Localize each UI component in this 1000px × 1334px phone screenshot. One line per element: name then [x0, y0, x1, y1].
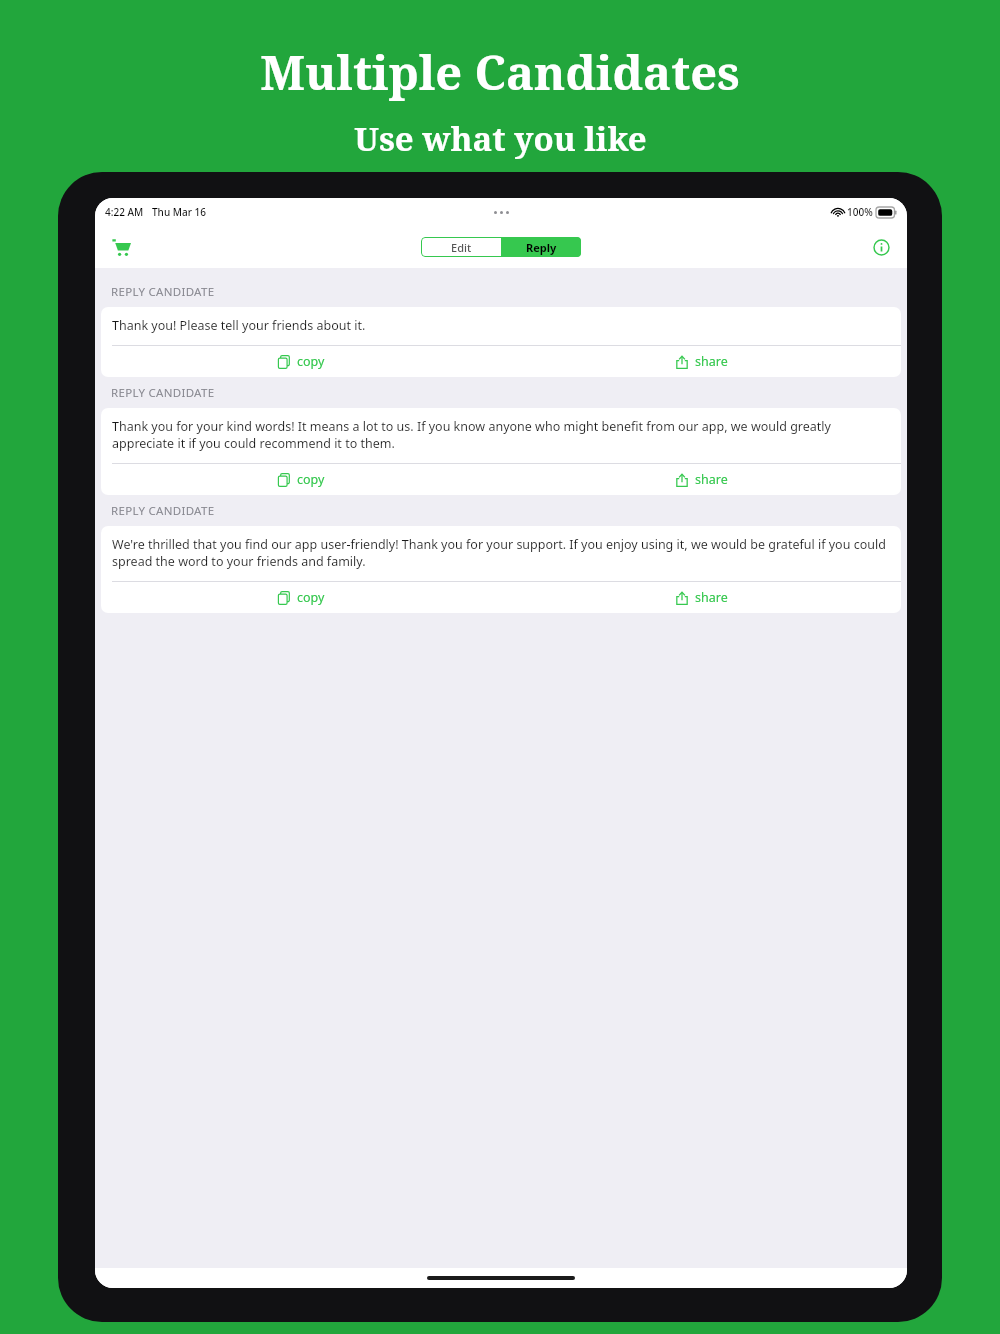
button[interactable]: Info: [863, 229, 899, 265]
button[interactable]: Store: [103, 229, 139, 265]
button[interactable]: Thank you for your kind words! It means …: [101, 408, 901, 463]
button[interactable]: Edit: [421, 237, 501, 257]
button[interactable]: Thank you! Please tell your friends abou…: [101, 307, 901, 345]
staticText: REPLY CANDIDATE: [111, 503, 215, 519]
staticText: copy: [297, 589, 325, 606]
staticText: Reply: [526, 240, 557, 255]
staticText: Thu Mar 16: [152, 205, 206, 219]
staticText: We're thrilled that you find our app use…: [112, 536, 890, 570]
staticText: REPLY CANDIDATE: [111, 385, 215, 401]
button[interactable]: We're thrilled that you find our app use…: [101, 526, 901, 581]
staticText: Edit: [451, 240, 472, 255]
button[interactable]: share: [501, 464, 901, 495]
button[interactable]: share: [501, 346, 901, 377]
staticText: 4:22 AM: [105, 205, 144, 219]
staticText: Thank you for your kind words! It means …: [112, 418, 890, 452]
button[interactable]: copy: [101, 346, 501, 377]
staticText: Multiple Candidates: [260, 40, 740, 104]
staticText: 100%: [847, 205, 873, 219]
staticText: copy: [297, 353, 325, 370]
staticText: REPLY CANDIDATE: [111, 284, 215, 300]
staticText: Thank you! Please tell your friends abou…: [112, 317, 366, 334]
button[interactable]: copy: [101, 582, 501, 613]
staticText: copy: [297, 471, 325, 488]
staticText: share: [695, 353, 728, 370]
staticText: share: [695, 471, 728, 488]
button[interactable]: share: [501, 582, 901, 613]
button[interactable]: copy: [101, 464, 501, 495]
button[interactable]: Reply: [501, 237, 581, 257]
staticText: share: [695, 589, 728, 606]
staticText: Use what you like: [354, 116, 647, 161]
